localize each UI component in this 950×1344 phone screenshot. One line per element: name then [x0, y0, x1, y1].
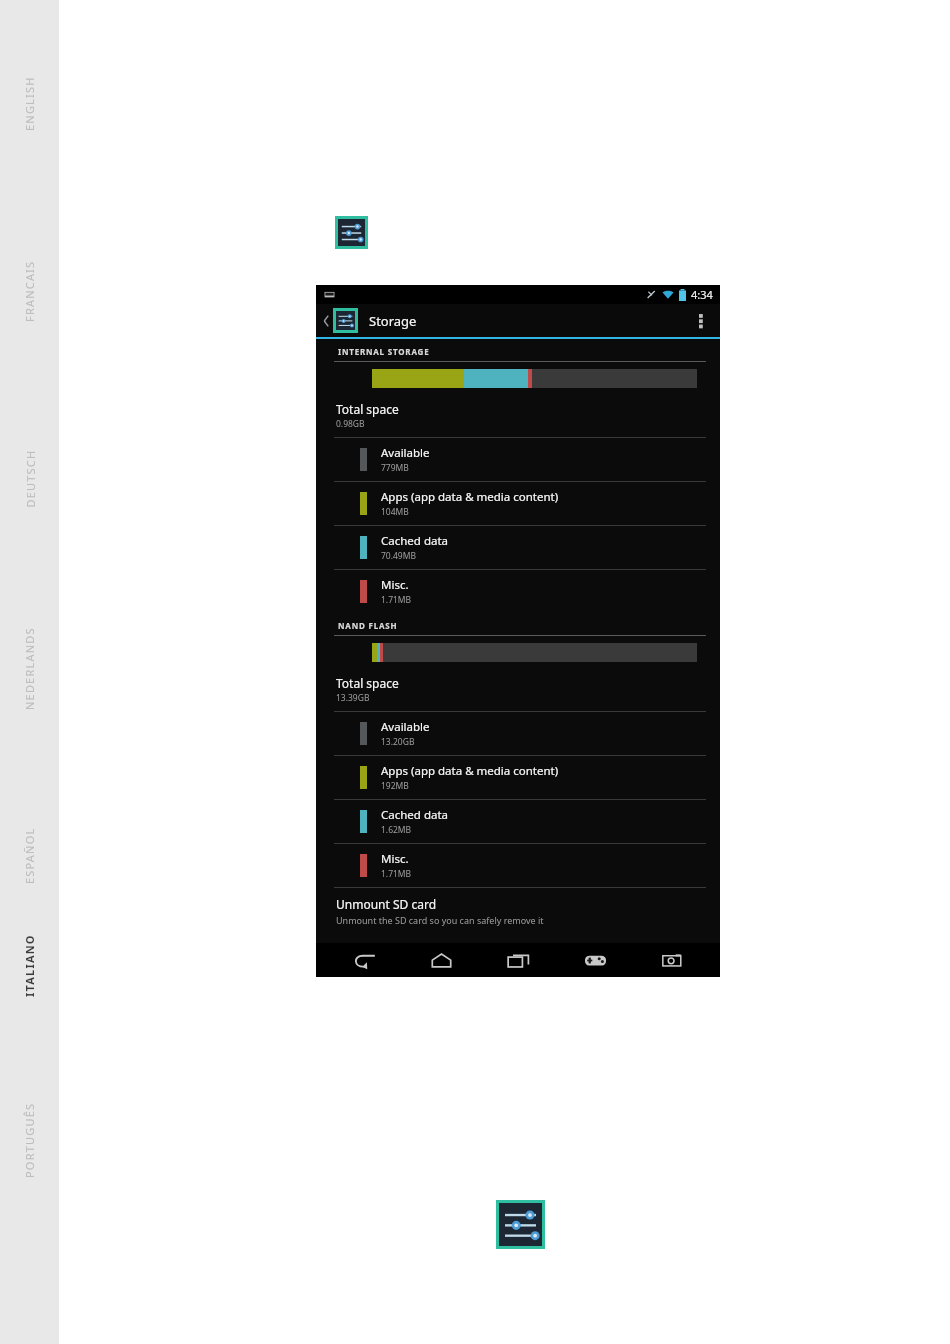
button[interactable]: NEDERLANDS: [0, 613, 59, 723]
staticText: 104MB: [381, 506, 409, 518]
staticText: Unmount the SD card so you can safely re…: [336, 914, 544, 926]
staticText: 4:34: [691, 287, 713, 302]
staticText: Total space: [336, 675, 399, 691]
staticText: 13.39GB: [336, 692, 370, 704]
button[interactable]: Navigate up: [321, 308, 360, 333]
staticText: ENGLISH: [22, 76, 37, 131]
staticText: Cached data: [381, 533, 449, 549]
staticText: Total space: [336, 401, 399, 417]
button[interactable]: Apps (app data & media content): [316, 482, 720, 525]
button[interactable]: Game controller: [566, 943, 624, 977]
button[interactable]: ESPAÑOL: [0, 800, 59, 910]
button[interactable]: DEUTSCH: [0, 423, 59, 533]
staticText: Misc.: [381, 577, 409, 593]
staticText: ITALIANO: [22, 934, 37, 997]
staticText: Cached data: [381, 807, 449, 823]
button[interactable]: Back: [335, 943, 393, 977]
staticText: ESPAÑOL: [22, 827, 37, 884]
staticText: DEUTSCH: [22, 449, 37, 507]
staticText: NEDERLANDS: [22, 627, 37, 710]
button[interactable]: Apps (app data & media content): [316, 756, 720, 799]
button[interactable]: PORTUGUÊS: [0, 1085, 59, 1195]
button[interactable]: ENGLISH: [0, 48, 59, 158]
staticText: 1.71MB: [381, 594, 412, 606]
button[interactable]: Recent apps: [489, 943, 547, 977]
staticText: 13.20GB: [381, 736, 415, 748]
staticText: 1.62MB: [381, 824, 412, 836]
button[interactable]: Available: [316, 438, 720, 481]
staticText: FRANCAIS: [22, 260, 37, 322]
staticText: Available: [381, 719, 430, 735]
button[interactable]: Available: [316, 712, 720, 755]
button[interactable]: More options: [690, 304, 712, 337]
button[interactable]: FRANCAIS: [0, 236, 59, 346]
button[interactable]: Unmount SD card: [316, 888, 720, 926]
button[interactable]: Cached data: [316, 800, 720, 843]
staticText: Storage: [369, 312, 417, 330]
button[interactable]: Misc.: [316, 844, 720, 887]
button[interactable]: Screenshot: [643, 943, 701, 977]
button[interactable]: Home: [412, 943, 470, 977]
staticText: Unmount SD card: [336, 896, 437, 912]
staticText: 779MB: [381, 462, 409, 474]
button[interactable]: Cached data: [316, 526, 720, 569]
staticText: INTERNAL STORAGE: [338, 346, 430, 357]
staticText: PORTUGUÊS: [22, 1102, 37, 1178]
staticText: 0.98GB: [336, 418, 365, 430]
staticText: NAND FLASH: [338, 620, 398, 631]
button[interactable]: Total space: [316, 668, 720, 711]
staticText: Available: [381, 445, 430, 461]
staticText: 1.71MB: [381, 868, 412, 880]
staticText: 70.49MB: [381, 550, 416, 562]
staticText: Apps (app data & media content): [381, 763, 559, 779]
staticText: Misc.: [381, 851, 409, 867]
staticText: Apps (app data & media content): [381, 489, 559, 505]
staticText: 192MB: [381, 780, 409, 792]
button[interactable]: ITALIANO: [0, 910, 59, 1020]
button[interactable]: Misc.: [316, 570, 720, 613]
button[interactable]: Total space: [316, 394, 720, 437]
